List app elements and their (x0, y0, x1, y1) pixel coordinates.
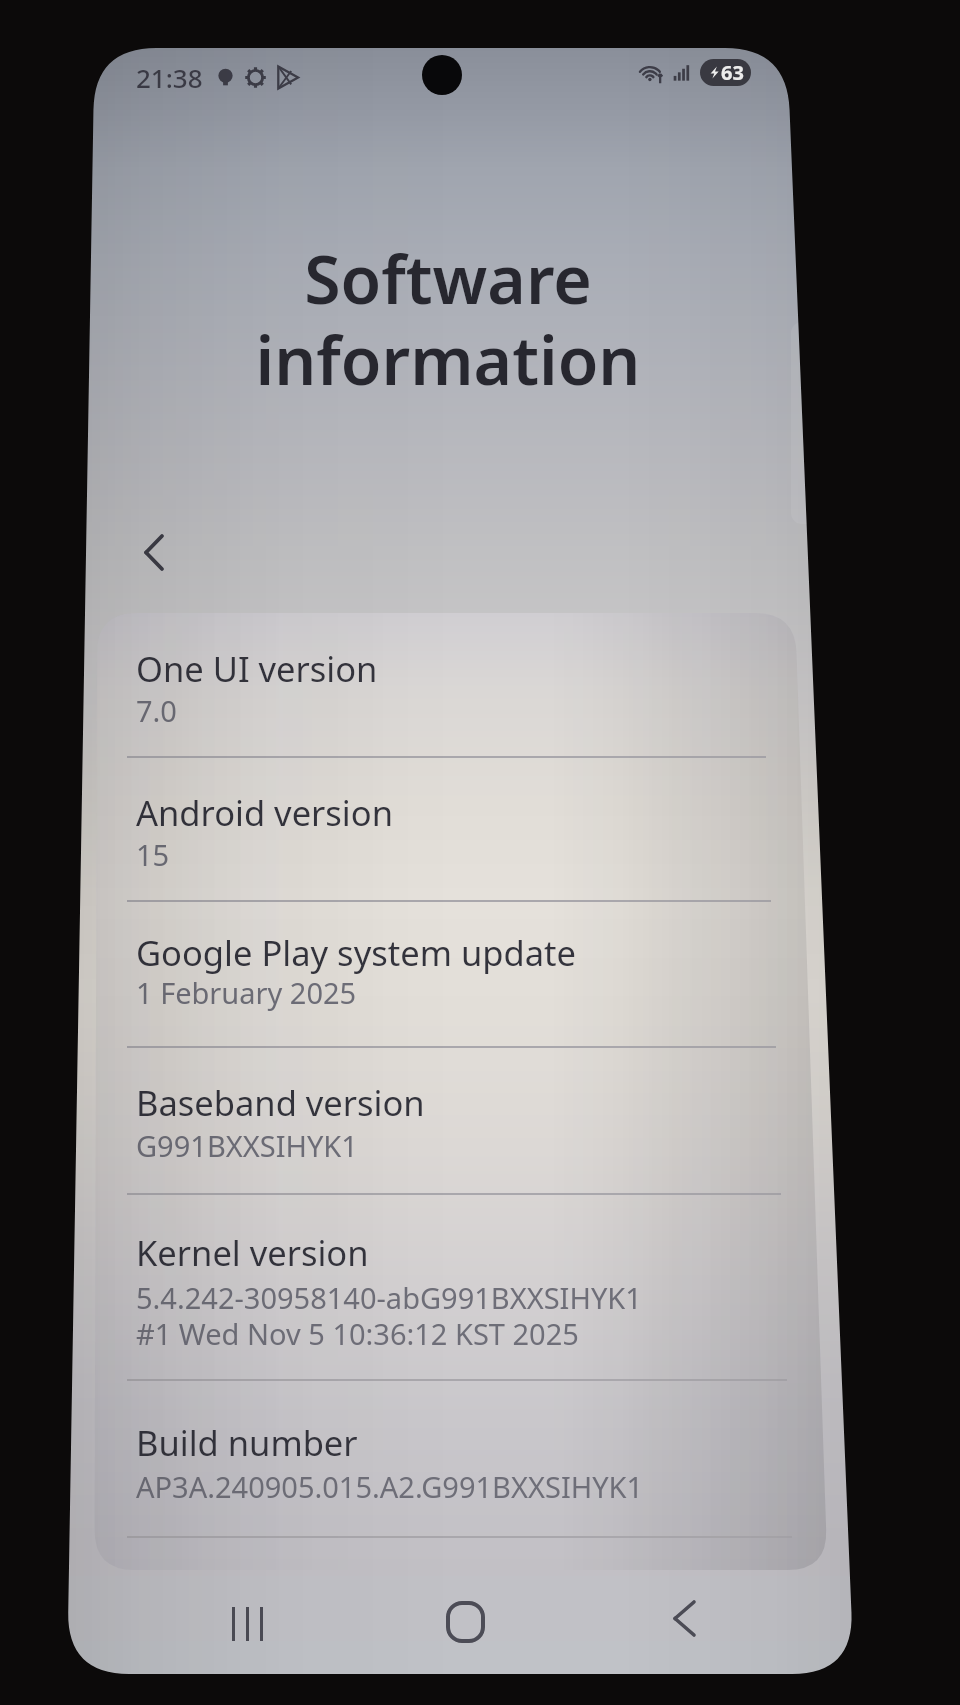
staticText: 63 (721, 59, 744, 86)
staticText: Android version (136, 789, 393, 836)
button[interactable]: Home (427, 1584, 503, 1660)
button[interactable] (90, 908, 830, 1054)
staticText: G991BXXSIHYK1 (136, 1126, 358, 1165)
staticText: 5.4.242-30958140-abG991BXXSIHYK1 (136, 1278, 642, 1317)
button[interactable] (90, 624, 830, 764)
staticText: Google Play system update (136, 929, 576, 976)
staticText: #1 Wed Nov 5 10:36:12 KST 2025 (136, 1314, 579, 1353)
button[interactable]: Recent apps (209, 1586, 285, 1662)
staticText: Software information (78, 233, 818, 405)
staticText: 1 February 2025 (136, 973, 357, 1012)
staticText: One UI version (136, 645, 378, 692)
staticText: 15 (136, 835, 170, 874)
staticText: Build number (136, 1419, 358, 1466)
button[interactable]: Back (646, 1580, 722, 1656)
staticText: 7.0 (136, 691, 177, 730)
button[interactable] (90, 768, 830, 908)
staticText: Kernel version (136, 1229, 369, 1276)
staticText: AP3A.240905.015.A2.G991BXXSIHYK1 (136, 1467, 644, 1506)
staticText: 21:38 (136, 60, 203, 95)
button[interactable] (90, 1208, 830, 1387)
button[interactable] (90, 1058, 830, 1201)
button[interactable] (90, 1398, 830, 1544)
staticText: Baseband version (136, 1079, 425, 1126)
button[interactable]: Navigate up (116, 514, 192, 590)
